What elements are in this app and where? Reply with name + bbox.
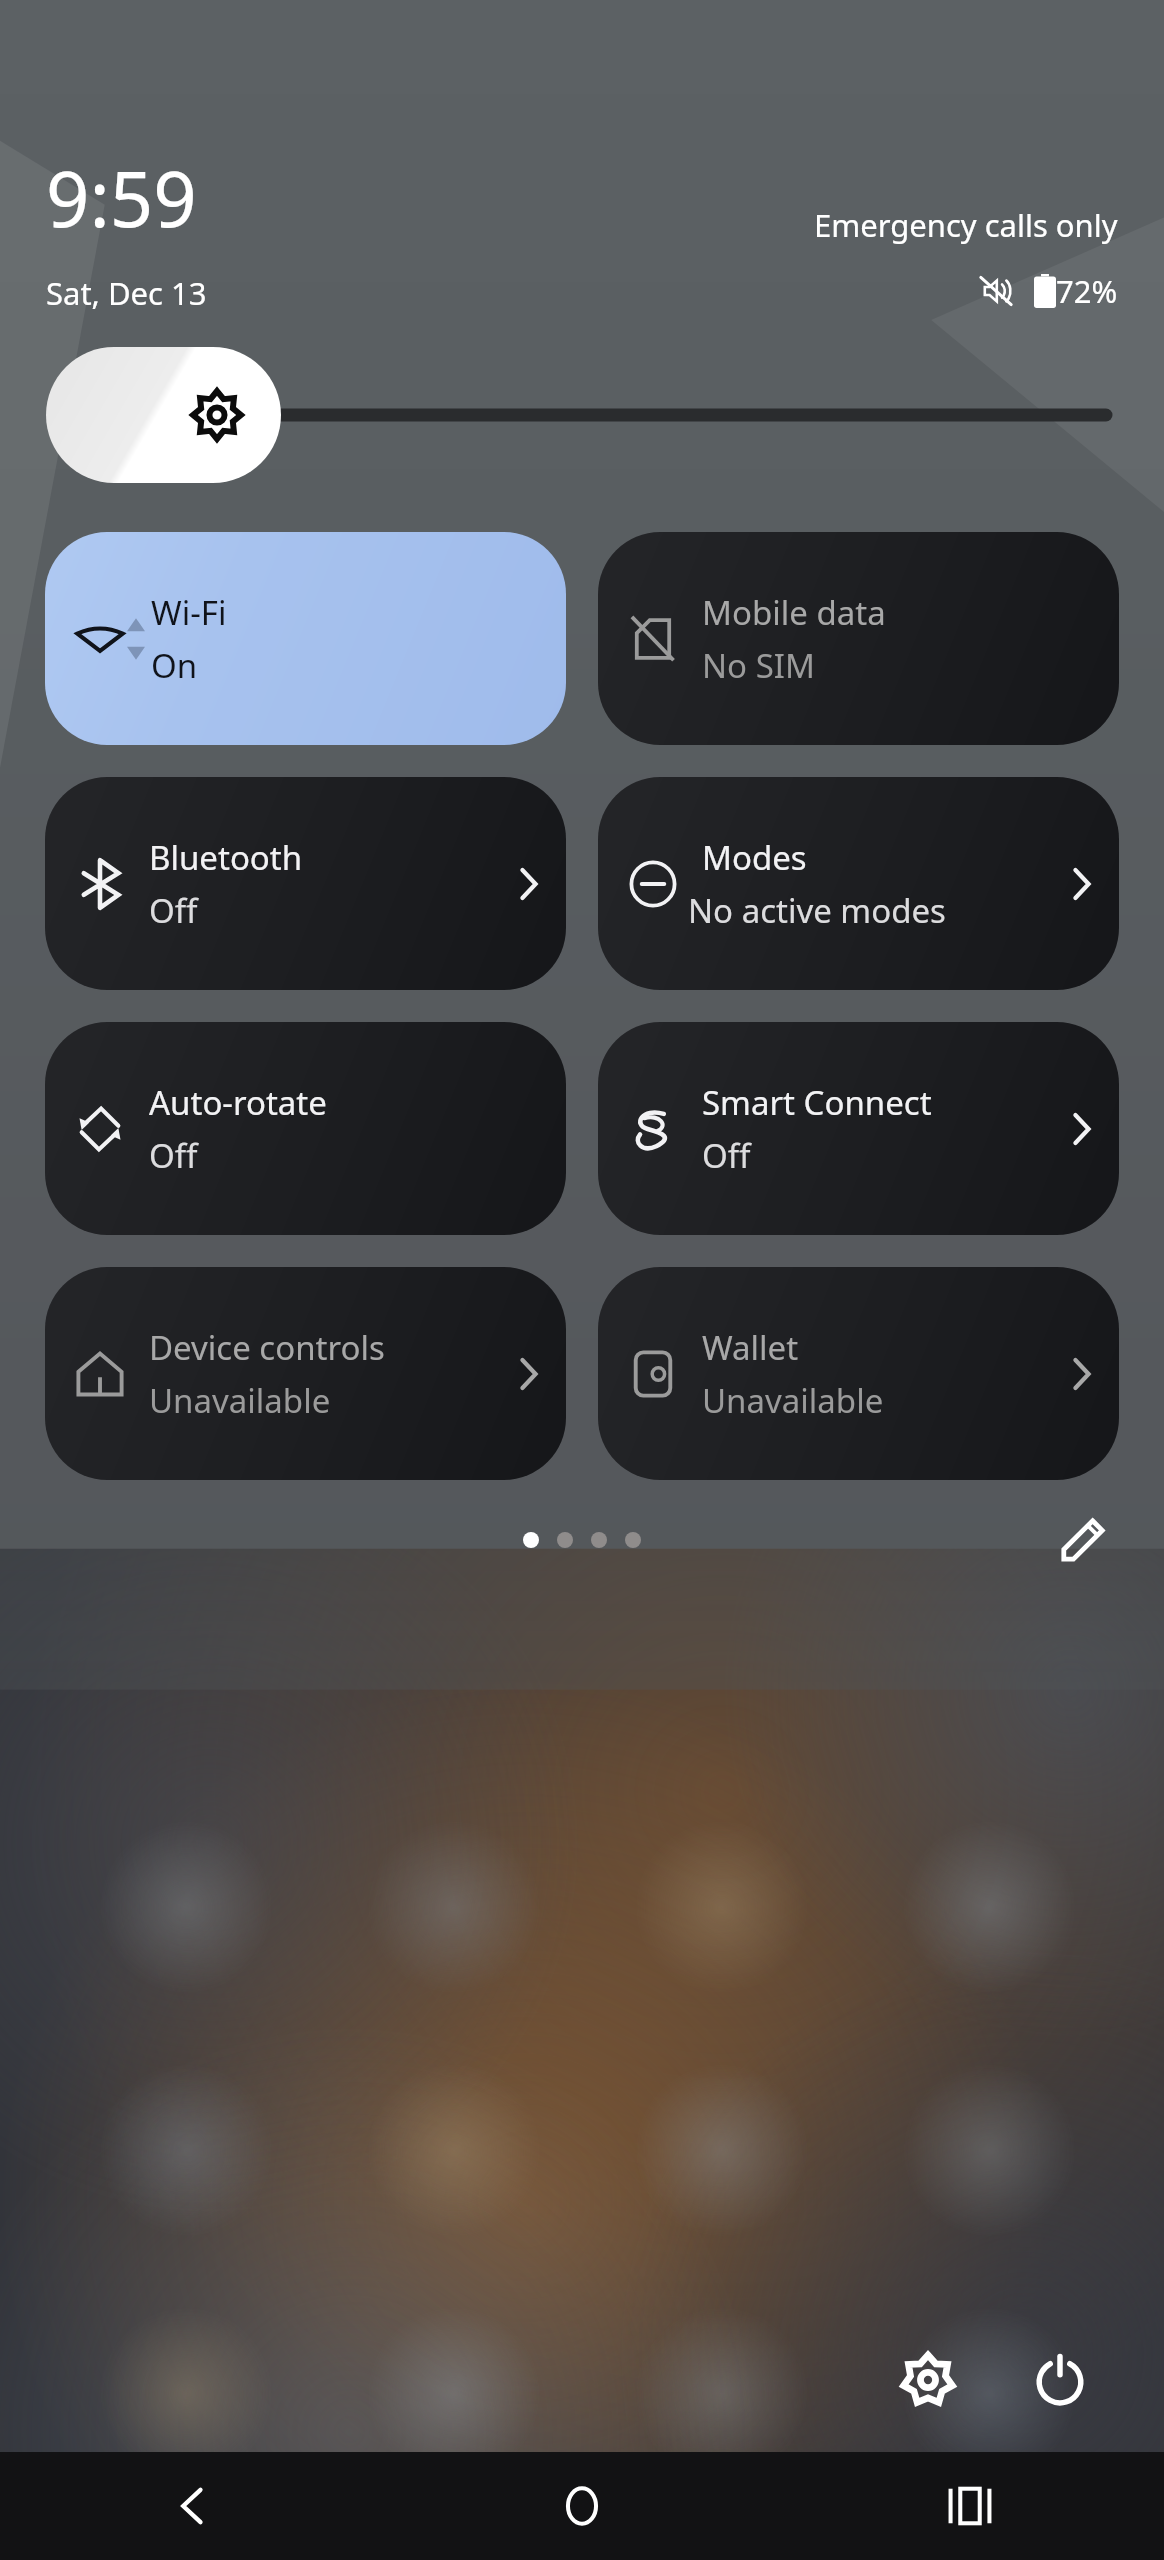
staticText: Wallet — [702, 1325, 799, 1370]
staticText: Emergency calls only — [814, 204, 1118, 246]
staticText: Sat, Dec 13 — [46, 272, 207, 314]
button[interactable]: Power — [1012, 2332, 1108, 2428]
button[interactable]: Bluetooth — [45, 777, 566, 990]
button[interactable]: Wallet — [598, 1267, 1119, 1480]
button[interactable]: Wi-Fi — [45, 532, 566, 745]
staticText: Off — [149, 1133, 198, 1178]
staticText: Unavailable — [702, 1378, 884, 1423]
button[interactable]: Smart Connect — [598, 1022, 1119, 1235]
staticText: 72% — [1056, 270, 1118, 312]
button[interactable]: Edit buttons — [1044, 1501, 1122, 1579]
staticText: Bluetooth — [149, 835, 303, 880]
button[interactable]: Home — [388, 2452, 776, 2560]
staticText: 9:59 — [46, 146, 197, 250]
staticText: Unavailable — [149, 1378, 331, 1423]
staticText: On — [151, 643, 198, 688]
staticText: Smart Connect — [702, 1080, 932, 1125]
button[interactable]: Brightness — [0, 340, 1164, 490]
button[interactable]: Device controls — [45, 1267, 566, 1480]
staticText: Wi-Fi — [151, 590, 227, 635]
staticText: No active modes — [688, 888, 946, 933]
staticText: Auto-rotate — [149, 1080, 327, 1125]
staticText: Off — [149, 888, 198, 933]
staticText: Mobile data — [702, 590, 886, 635]
button[interactable]: Auto-rotate — [45, 1022, 566, 1235]
staticText: No SIM — [702, 643, 815, 688]
button[interactable]: Recents — [776, 2452, 1164, 2560]
button[interactable]: Modes — [598, 777, 1119, 990]
button[interactable]: Back — [0, 2452, 388, 2560]
button[interactable]: Settings — [880, 2332, 976, 2428]
staticText: Device controls — [149, 1325, 385, 1370]
staticText: Modes — [702, 835, 807, 880]
button[interactable]: Mobile data — [598, 532, 1119, 745]
staticText: Off — [702, 1133, 751, 1178]
